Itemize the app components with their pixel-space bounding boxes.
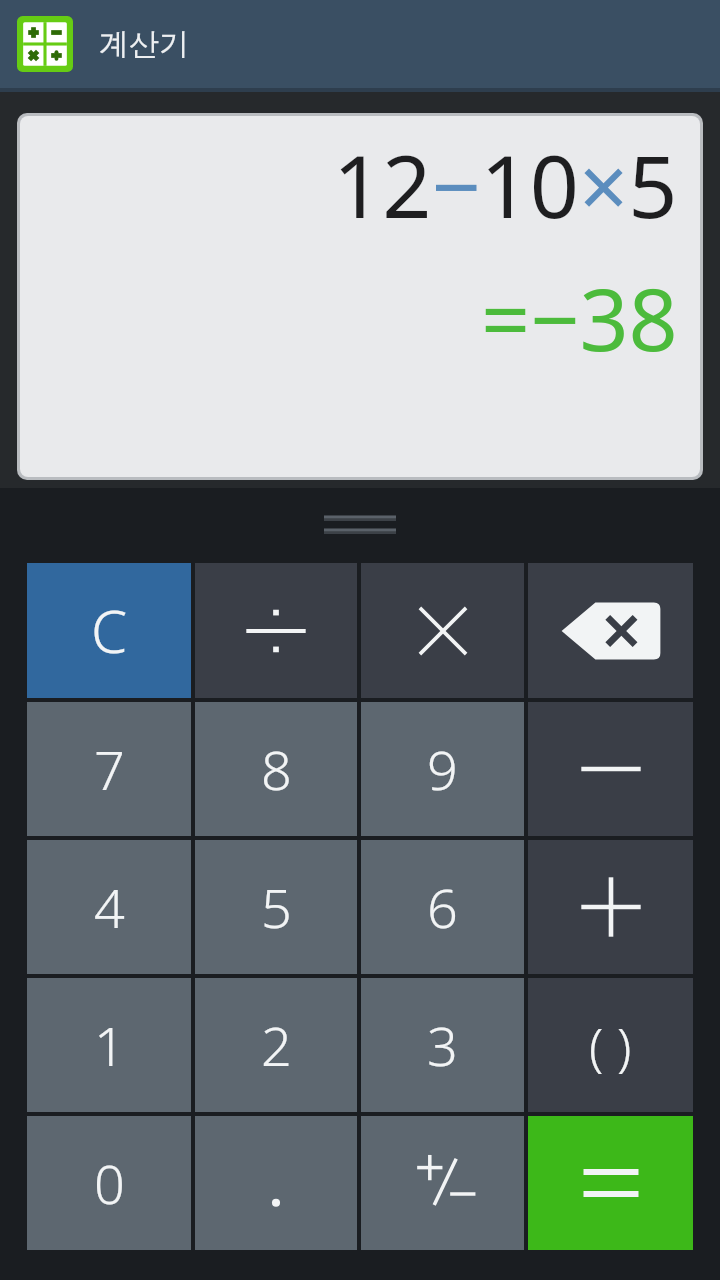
button[interactable]: Multiply [361,563,524,698]
button[interactable]: 0 [27,1116,191,1250]
staticText: ( ) [589,1010,632,1081]
staticText: 3 [427,1008,458,1082]
staticText: 1 [94,1008,125,1082]
staticText: 7 [94,732,125,806]
staticText: =−38 [481,259,678,376]
button[interactable]: Toggle sign [361,1116,524,1250]
button[interactable]: 7 [27,702,191,836]
staticText: 0 [94,1146,125,1220]
staticText: 12−10×5 [333,126,678,243]
button[interactable]: 5 [195,840,357,974]
staticText: 8 [261,732,292,806]
button[interactable]: 2 [195,978,357,1112]
button[interactable]: 8 [195,702,357,836]
button[interactable]: Equals [528,1116,693,1250]
button[interactable]: 6 [361,840,524,974]
staticText: 2 [261,1008,292,1082]
staticText: 9 [427,732,458,806]
button[interactable]: Decimal point [195,1116,357,1250]
button[interactable]: 1 [27,978,191,1112]
button[interactable]: Add [528,840,693,974]
button[interactable]: C [27,563,191,698]
staticText: C [91,591,128,670]
button[interactable]: Divide [195,563,357,698]
button[interactable]: Backspace [528,563,693,698]
button[interactable]: 3 [361,978,524,1112]
staticText: 5 [261,870,292,944]
button[interactable]: ( ) [528,978,693,1112]
staticText: 4 [94,870,125,944]
button[interactable]: Subtract [528,702,693,836]
button[interactable]: 9 [361,702,524,836]
staticText: 6 [427,870,458,944]
staticText: 계산기 [99,25,189,63]
button[interactable]: 4 [27,840,191,974]
